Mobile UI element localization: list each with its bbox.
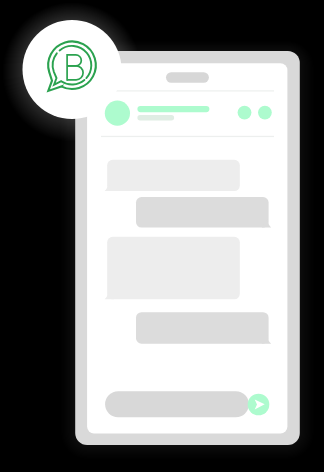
button[interactable]: Type a message: [105, 391, 249, 417]
button[interactable]: Chat contact: [100, 96, 220, 130]
button[interactable]: App logo: [23, 20, 122, 119]
button[interactable]: Received message: [104, 159, 240, 192]
button[interactable]: More options: [234, 100, 278, 126]
button[interactable]: Received message: [104, 236, 240, 300]
button[interactable]: Sent message: [136, 197, 272, 229]
button[interactable]: Send: [247, 394, 269, 416]
button[interactable]: Sent message: [136, 312, 272, 345]
